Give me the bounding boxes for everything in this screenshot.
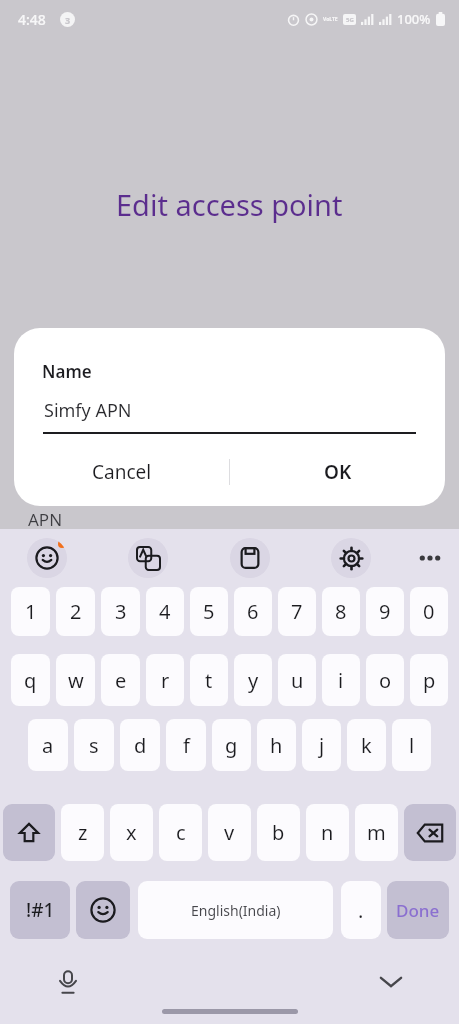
button[interactable]: k (347, 719, 386, 771)
button[interactable]: p (410, 654, 448, 706)
button[interactable]: u (278, 654, 316, 706)
button[interactable]: Shift (3, 804, 55, 861)
button[interactable]: 6 (234, 587, 272, 636)
button[interactable]: 9 (366, 587, 404, 636)
button[interactable]: n (306, 804, 349, 861)
staticText: 5 (203, 598, 215, 625)
staticText: o (379, 667, 392, 694)
staticText: Cancel (92, 459, 152, 485)
button[interactable]: 2 (56, 587, 95, 636)
button[interactable]: Hide keyboard (371, 962, 411, 1002)
staticText: a (42, 732, 54, 759)
button[interactable]: Keyboard tool (331, 538, 371, 578)
button[interactable]: m (355, 804, 398, 861)
button[interactable]: i (322, 654, 360, 706)
button[interactable]: g (212, 719, 251, 771)
button[interactable]: . (341, 881, 381, 939)
staticText: q (24, 667, 37, 694)
button[interactable]: English(India) (138, 881, 333, 939)
staticText: f (183, 732, 190, 759)
button[interactable]: 8 (322, 587, 360, 636)
staticText: 9 (379, 598, 391, 625)
button[interactable]: Backspace (404, 804, 456, 861)
button[interactable]: o (366, 654, 404, 706)
button[interactable]: 5 (190, 587, 228, 636)
staticText: 4:48 (18, 10, 46, 29)
button[interactable]: w (56, 654, 95, 706)
button[interactable]: Cancel (14, 444, 229, 500)
button[interactable]: !#1 (10, 881, 70, 939)
staticText: e (115, 667, 127, 694)
staticText: Simfy APN (44, 398, 132, 423)
button[interactable]: Keyboard tool (27, 538, 67, 578)
button[interactable]: s (74, 719, 114, 771)
staticText: u (291, 667, 304, 694)
staticText: English(India) (191, 901, 281, 920)
button[interactable]: v (208, 804, 251, 861)
staticText: !#1 (26, 897, 55, 923)
staticText: 6 (247, 598, 259, 625)
staticText: c (176, 819, 186, 846)
button[interactable]: Voice input (48, 962, 88, 1002)
staticText: h (270, 732, 283, 759)
staticText: 8 (335, 598, 347, 625)
button[interactable]: t (190, 654, 228, 706)
button[interactable]: b (257, 804, 300, 861)
staticText: Done (396, 899, 440, 922)
staticText: l (409, 732, 415, 759)
button[interactable]: e (101, 654, 140, 706)
button[interactable]: Keyboard tool (230, 538, 270, 578)
staticText: VoLTE (323, 16, 338, 23)
button[interactable]: x (110, 804, 153, 861)
staticText: j (319, 732, 325, 759)
button[interactable]: f (166, 719, 206, 771)
staticText: m (367, 819, 386, 846)
staticText: 3 (115, 598, 127, 625)
staticText: b (272, 819, 285, 846)
staticText: 7 (291, 598, 303, 625)
button[interactable]: 1 (11, 587, 50, 636)
staticText: Edit access point (116, 185, 343, 224)
staticText: 3 (65, 14, 71, 26)
staticText: 2 (70, 598, 82, 625)
button[interactable]: c (159, 804, 202, 861)
staticText: OK (324, 459, 352, 485)
button[interactable]: y (234, 654, 272, 706)
button[interactable]: Keyboard tool (128, 538, 168, 578)
button[interactable]: j (302, 719, 341, 771)
button[interactable]: d (120, 719, 160, 771)
button[interactable]: Done (387, 881, 449, 939)
button[interactable]: OK (230, 444, 445, 500)
staticText: w (68, 667, 84, 694)
staticText: 1 (25, 598, 37, 625)
staticText: y (248, 667, 259, 694)
button[interactable]: a (28, 719, 68, 771)
button[interactable]: z (61, 804, 104, 861)
staticText: 0 (423, 598, 435, 625)
button[interactable]: r (146, 654, 184, 706)
staticText: v (224, 819, 235, 846)
button[interactable]: l (392, 719, 431, 771)
staticText: . (358, 897, 364, 924)
button[interactable]: 3 (101, 587, 140, 636)
staticText: t (205, 667, 213, 694)
button[interactable]: More options (410, 538, 450, 578)
staticText: n (321, 819, 334, 846)
button[interactable]: q (11, 654, 50, 706)
staticText: i (338, 667, 344, 694)
staticText: r (161, 667, 170, 694)
button[interactable]: 4 (146, 587, 184, 636)
staticText: 4 (159, 598, 171, 625)
staticText: APN (28, 508, 63, 531)
staticText: d (134, 732, 147, 759)
staticText: p (423, 667, 436, 694)
staticText: z (78, 819, 88, 846)
staticText: k (361, 732, 372, 759)
button[interactable]: 0 (410, 587, 448, 636)
button[interactable]: h (257, 719, 296, 771)
staticText: x (126, 819, 137, 846)
staticText: g (225, 732, 238, 759)
button[interactable]: Emoji (76, 881, 130, 939)
button[interactable]: 7 (278, 587, 316, 636)
staticText: s (89, 732, 99, 759)
